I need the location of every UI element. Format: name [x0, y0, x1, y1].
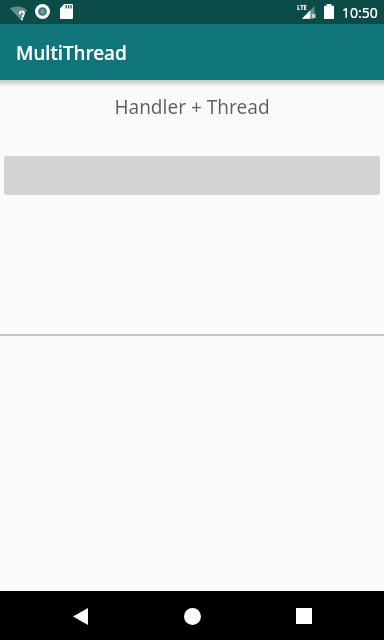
- button[interactable]: Recents: [280, 592, 328, 640]
- button[interactable]: Home: [168, 592, 216, 640]
- staticText: MultiThread: [16, 40, 127, 66]
- staticText: Handler + Thread: [0, 94, 384, 120]
- staticText: 10:50: [342, 3, 378, 22]
- button[interactable]: Back: [56, 592, 104, 640]
